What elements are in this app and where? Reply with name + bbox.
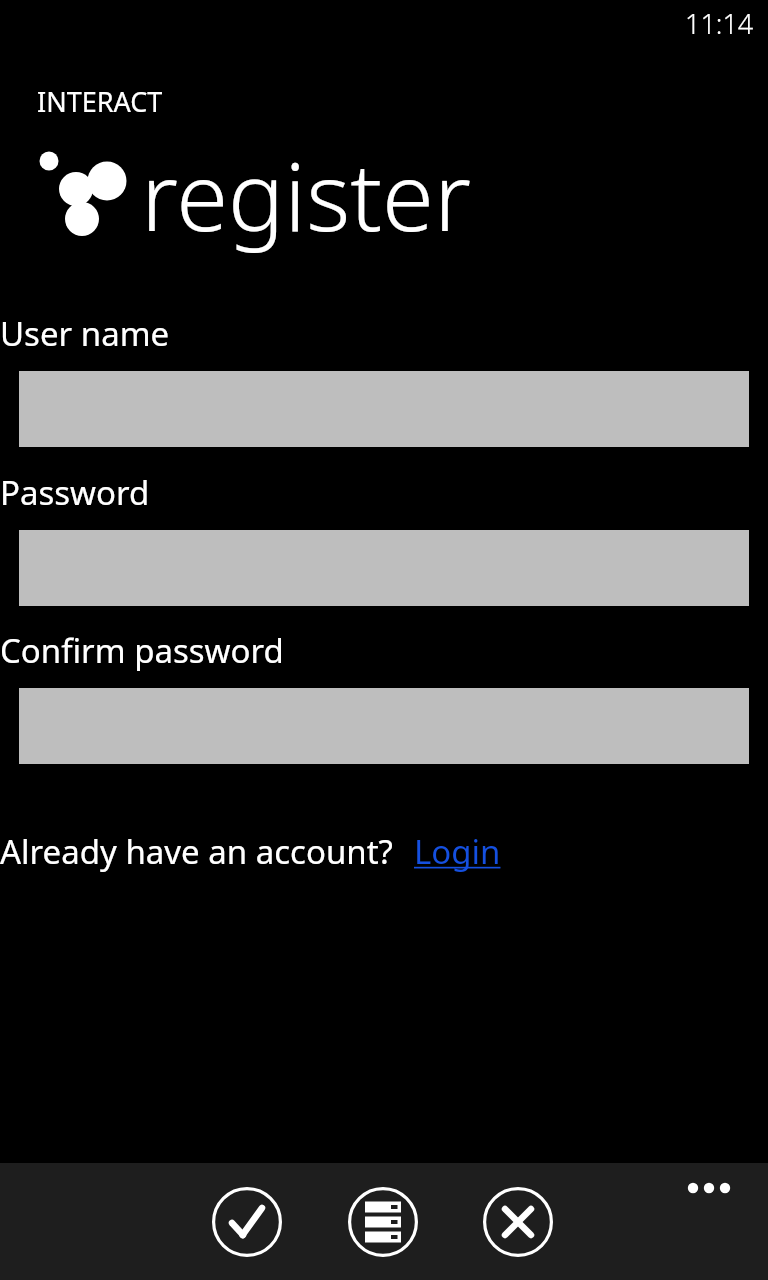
button[interactable]: Accept <box>212 1187 282 1257</box>
staticText: User name <box>0 311 170 356</box>
staticText: 11:14 <box>685 5 754 42</box>
button[interactable]: Save <box>348 1187 418 1257</box>
staticText: Already have an account? <box>0 829 393 874</box>
button[interactable]: More options <box>676 1169 744 1215</box>
button[interactable]: Login <box>414 829 501 874</box>
staticText: Password <box>0 470 150 515</box>
staticText: INTERACT <box>37 83 163 120</box>
staticText: Login <box>414 829 501 874</box>
button[interactable]: Cancel <box>483 1187 553 1257</box>
staticText: Confirm password <box>0 628 284 673</box>
staticText: register <box>141 131 472 259</box>
